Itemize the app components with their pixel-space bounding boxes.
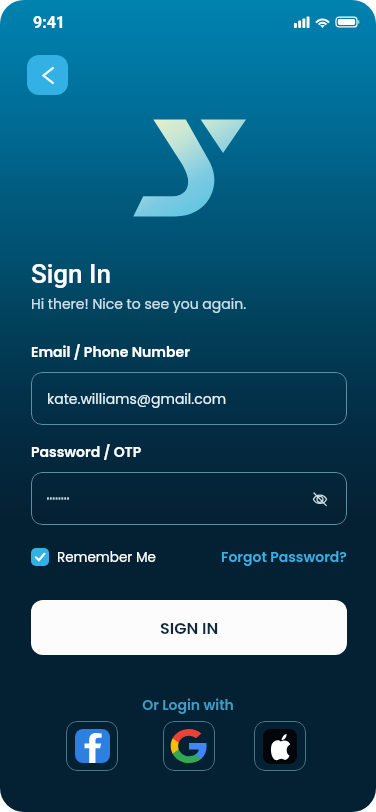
button[interactable]: Sign in with Google bbox=[163, 721, 215, 771]
button[interactable]: Forgot Password? bbox=[220, 547, 347, 567]
staticText: Sign In bbox=[31, 259, 111, 289]
button[interactable]: Remember Me bbox=[31, 547, 156, 567]
button[interactable] bbox=[31, 472, 347, 525]
staticText: kate.williams@gmail.com bbox=[47, 389, 227, 409]
staticText: Password / OTP bbox=[31, 442, 142, 462]
staticText: 9:41 bbox=[33, 13, 66, 32]
button[interactable]: Show password bbox=[306, 485, 334, 513]
button[interactable]: Sign in with Apple bbox=[254, 721, 306, 771]
staticText: Remember Me bbox=[57, 548, 156, 567]
staticText: Forgot Password? bbox=[221, 547, 347, 567]
button[interactable]: kate.williams@gmail.com bbox=[31, 372, 347, 425]
staticText: SIGN IN bbox=[160, 617, 219, 639]
button[interactable]: Back bbox=[27, 55, 68, 95]
staticText: Email / Phone Number bbox=[31, 342, 190, 362]
button[interactable]: Sign in with Facebook bbox=[66, 721, 118, 771]
staticText: Or Login with bbox=[142, 695, 234, 715]
staticText: Hi there! Nice to see you again. bbox=[31, 294, 247, 314]
button[interactable]: SIGN IN bbox=[31, 600, 347, 655]
